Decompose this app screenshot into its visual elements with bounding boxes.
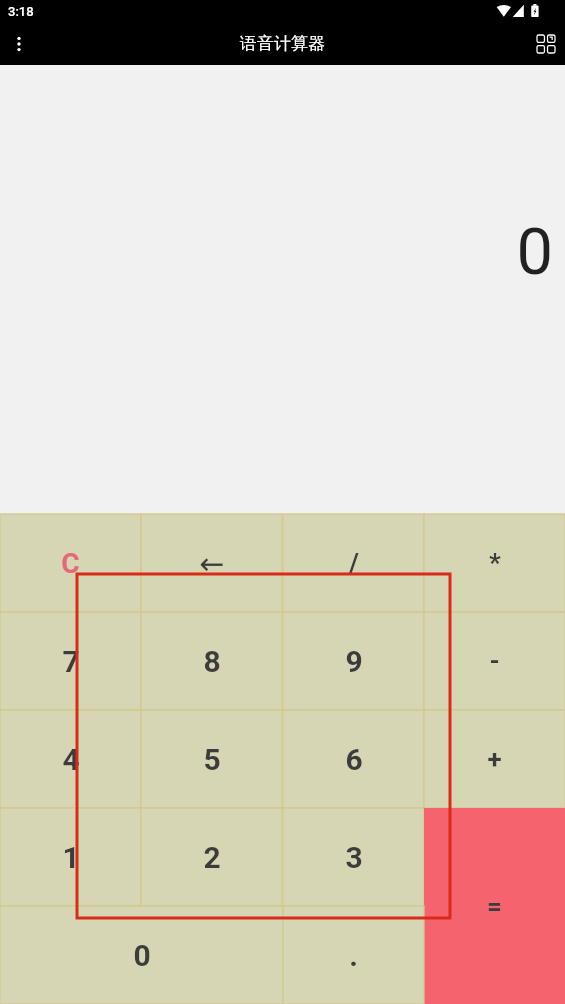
button[interactable]: 5: [141, 710, 282, 808]
button[interactable]: -: [424, 612, 565, 710]
button[interactable]: 0: [0, 906, 283, 1004]
button[interactable]: /: [283, 514, 424, 612]
staticText: +: [487, 744, 502, 774]
button[interactable]: 2: [141, 808, 282, 906]
button[interactable]: .: [283, 906, 424, 1004]
button[interactable]: +: [424, 710, 565, 808]
button[interactable]: =: [424, 808, 565, 1004]
staticText: 4: [62, 742, 80, 777]
button[interactable]: 9: [283, 612, 424, 710]
button[interactable]: 8: [141, 612, 282, 710]
button[interactable]: 1: [0, 808, 141, 906]
staticText: -: [489, 646, 500, 676]
staticText: 2: [203, 840, 221, 875]
button[interactable]: More options: [0, 25, 38, 63]
button[interactable]: *: [424, 514, 565, 612]
button[interactable]: 6: [283, 710, 424, 808]
staticText: 7: [62, 644, 80, 679]
staticText: C: [61, 547, 80, 580]
staticText: 5: [203, 742, 221, 777]
staticText: 9: [345, 644, 363, 679]
staticText: =: [487, 891, 502, 921]
button[interactable]: 3: [283, 808, 424, 906]
button[interactable]: C: [0, 514, 141, 612]
staticText: 0: [516, 214, 553, 290]
staticText: /: [349, 548, 359, 578]
button[interactable]: 4: [0, 710, 141, 808]
staticText: 6: [345, 742, 363, 777]
staticText: 3:18: [8, 4, 34, 19]
staticText: ←: [199, 546, 225, 581]
staticText: 0: [133, 938, 151, 973]
staticText: 8: [203, 644, 221, 679]
button[interactable]: 7: [0, 612, 141, 710]
staticText: 3: [345, 840, 363, 875]
staticText: .: [349, 938, 358, 973]
staticText: *: [489, 548, 501, 578]
staticText: 语音计算器: [240, 33, 325, 54]
staticText: 1: [62, 840, 80, 875]
button[interactable]: ←: [141, 514, 282, 612]
button[interactable]: Apps: [527, 25, 565, 63]
